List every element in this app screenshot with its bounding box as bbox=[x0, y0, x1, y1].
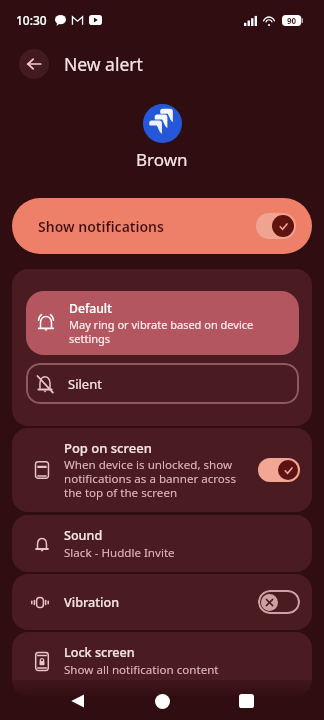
staticText: Slack - Huddle Invite bbox=[64, 545, 175, 561]
staticText: Sound bbox=[64, 527, 103, 544]
staticText: When device is unlocked, show notificati… bbox=[64, 457, 246, 501]
button[interactable]: Back bbox=[19, 49, 49, 79]
staticText: New alert bbox=[64, 52, 143, 76]
button[interactable]: Recents bbox=[222, 682, 271, 720]
button[interactable]: Vibration bbox=[12, 574, 312, 630]
staticText: Vibration bbox=[64, 594, 258, 611]
button[interactable]: Back bbox=[53, 682, 102, 720]
staticText: Show all notification content bbox=[64, 662, 219, 678]
staticText: May ring or vibrate based on device sett… bbox=[69, 317, 287, 346]
button[interactable]: Lock screen bbox=[12, 632, 312, 689]
button[interactable]: Sound bbox=[12, 515, 312, 572]
button[interactable]: Default bbox=[26, 291, 299, 355]
staticText: Lock screen bbox=[64, 644, 135, 661]
staticText: 90 bbox=[287, 15, 297, 26]
staticText: Pop on screen bbox=[64, 439, 152, 457]
button[interactable]: Pop on screen bbox=[12, 428, 312, 512]
staticText: 10:30 bbox=[16, 12, 47, 28]
staticText: Default bbox=[69, 300, 112, 317]
staticText: Silent bbox=[68, 375, 102, 393]
button[interactable]: Show notifications bbox=[12, 198, 312, 254]
staticText: Brown bbox=[136, 148, 188, 171]
staticText: Show notifications bbox=[38, 217, 164, 236]
button[interactable]: Silent bbox=[26, 363, 299, 404]
button[interactable]: Home bbox=[138, 682, 187, 720]
